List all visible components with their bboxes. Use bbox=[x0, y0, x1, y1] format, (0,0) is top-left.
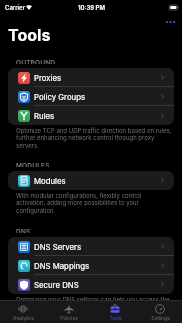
button[interactable]: Tools bbox=[92, 301, 138, 323]
other: Settings bbox=[155, 304, 165, 314]
button[interactable]: Rules bbox=[8, 106, 174, 125]
staticText: Secure DNS bbox=[34, 280, 79, 289]
staticText: Policy Groups bbox=[34, 92, 86, 101]
staticText: DNS bbox=[16, 228, 31, 233]
staticText: Modules bbox=[34, 176, 66, 185]
staticText: Policies bbox=[60, 315, 78, 321]
other: Tools bbox=[110, 304, 120, 314]
staticText: With modular configurations, flexibly co… bbox=[16, 192, 142, 215]
other: Policies bbox=[64, 304, 74, 314]
button[interactable]: Settings bbox=[138, 301, 182, 323]
staticText: Settings bbox=[151, 315, 170, 321]
staticText: Proxies bbox=[34, 73, 62, 82]
staticText: OUTBOUND bbox=[16, 59, 56, 64]
button[interactable]: Policies bbox=[46, 301, 92, 323]
staticText: Optimize TCP and UDP traffic direction b… bbox=[16, 127, 178, 150]
other: Analytics bbox=[18, 304, 28, 314]
button[interactable]: Modules bbox=[8, 171, 174, 190]
staticText: Tools bbox=[8, 25, 51, 44]
button[interactable]: Proxies bbox=[8, 68, 174, 87]
staticText: Analytics bbox=[13, 315, 34, 321]
staticText: Carrier bbox=[5, 4, 25, 11]
staticText: 10:39 PM bbox=[78, 4, 105, 11]
staticText: DNS Mappings bbox=[34, 261, 90, 270]
staticText: MODULES bbox=[16, 162, 50, 167]
staticText: Optimizing your DNS settings can help yo… bbox=[16, 296, 170, 303]
button[interactable]: Analytics bbox=[0, 301, 46, 323]
button[interactable]: More options bbox=[162, 14, 178, 30]
staticText: Rules bbox=[34, 111, 55, 120]
staticText: Tools bbox=[109, 315, 122, 321]
button[interactable]: DNS Servers bbox=[8, 237, 174, 256]
staticText: DNS Servers bbox=[34, 242, 82, 251]
button[interactable]: Secure DNS bbox=[8, 275, 174, 294]
button[interactable]: DNS Mappings bbox=[8, 256, 174, 275]
button[interactable]: Policy Groups bbox=[8, 87, 174, 106]
